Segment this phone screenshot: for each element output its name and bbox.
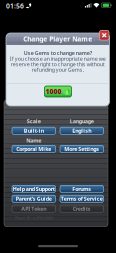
button[interactable]: Built-in	[12, 127, 55, 134]
button[interactable]: Corporal Mike	[12, 145, 55, 153]
staticText: Name	[26, 137, 41, 144]
staticText: Help and Support	[13, 185, 55, 193]
button[interactable]: More Settings	[60, 145, 103, 153]
staticText: English	[72, 127, 91, 134]
staticText: 01:56	[6, 2, 24, 10]
button[interactable]: English	[60, 127, 103, 134]
staticText: Language	[70, 118, 94, 125]
button[interactable]: Terms of Service	[60, 195, 103, 202]
staticText: More Settings	[64, 145, 99, 153]
button[interactable]: Forums	[60, 185, 103, 193]
staticText: Parent's Guide	[16, 195, 52, 202]
staticText: Forums	[72, 185, 91, 193]
staticText: 1000	[46, 87, 62, 96]
staticText: Corporal Mike	[16, 145, 51, 153]
staticText: Credits	[73, 205, 91, 212]
staticText: If you choose an inappropriate name we	[10, 55, 106, 62]
button[interactable]: Credits	[60, 205, 103, 212]
staticText: Use Gems to change name?	[24, 49, 92, 57]
staticText: Built-in	[24, 127, 44, 134]
button[interactable]: Parent's Guide	[12, 195, 55, 202]
staticText: Terms of Service	[61, 195, 103, 202]
staticText: Player ID #2PYLQ8V0	[15, 215, 53, 221]
staticText: refunding your Gems.	[32, 66, 84, 73]
button[interactable]: Close	[99, 30, 109, 40]
button[interactable]: 1000	[44, 86, 71, 97]
staticText: API Token	[21, 205, 46, 212]
staticText: Change Player Name	[23, 34, 92, 43]
button[interactable]: API Token	[12, 205, 55, 212]
button[interactable]: Help and Support	[12, 185, 55, 193]
staticText: reserve the right to change this without	[11, 61, 105, 68]
staticText: Scale	[27, 118, 41, 125]
